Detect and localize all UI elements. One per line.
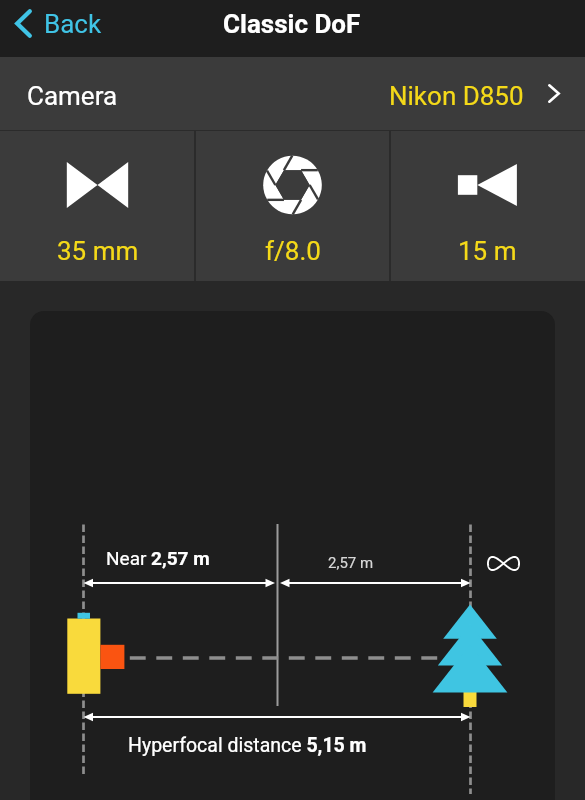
staticText: Classic DoF — [223, 9, 361, 39]
button[interactable]: Aperture — [195, 131, 390, 281]
staticText: 2,57 m — [328, 554, 374, 572]
staticText: Nikon D850 — [389, 81, 524, 111]
staticText: 15 m — [458, 236, 517, 266]
staticText: Near 2,57 m — [106, 547, 210, 569]
button[interactable]: Subject distance — [390, 131, 585, 281]
staticText: Camera — [27, 81, 118, 111]
staticText: Hyperfocal distance 5,15 m — [128, 734, 367, 757]
staticText: f/8.0 — [265, 236, 321, 266]
button[interactable]: Focal length — [0, 131, 195, 281]
button[interactable]: Back — [0, 0, 118, 57]
staticText: 35 mm — [57, 236, 139, 266]
button[interactable]: Camera — [0, 57, 585, 130]
staticText: Back — [44, 9, 102, 39]
